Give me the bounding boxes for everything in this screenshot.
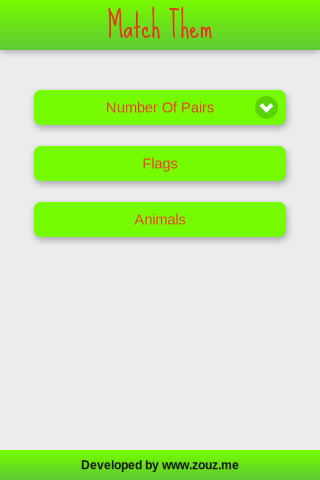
staticText: Number Of Pairs: [106, 99, 214, 116]
staticText: Developed by www.zouz.me: [81, 458, 239, 472]
staticText: Match Them: [107, 0, 212, 57]
staticText: Animals: [134, 211, 185, 228]
button[interactable]: Flags: [34, 146, 286, 181]
button[interactable]: Number Of Pairs: [34, 90, 286, 125]
button[interactable]: Animals: [34, 202, 286, 237]
staticText: Flags: [142, 155, 177, 172]
